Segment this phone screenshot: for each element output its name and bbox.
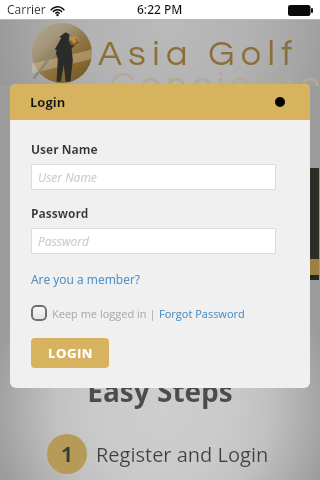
staticText: Carrier bbox=[7, 1, 46, 17]
staticText: Asia Golf bbox=[98, 35, 299, 72]
button[interactable]: Forgot Password bbox=[159, 306, 245, 321]
staticText: Register and Login bbox=[96, 441, 269, 468]
staticText: LOGIN bbox=[48, 344, 93, 362]
other: Wi-Fi bbox=[51, 5, 64, 16]
button[interactable]: Are you a member? bbox=[31, 271, 140, 287]
staticText: Easy Steps bbox=[0, 372, 320, 410]
staticText: Password bbox=[38, 233, 89, 249]
staticText: Keep me logged in | bbox=[52, 306, 159, 321]
button[interactable]: 1 bbox=[47, 434, 269, 474]
button[interactable]: Login bbox=[10, 84, 310, 120]
staticText: User Name bbox=[38, 169, 97, 185]
button[interactable]: Close bbox=[268, 90, 292, 114]
button[interactable]: User Name bbox=[31, 164, 276, 190]
staticText: User Name bbox=[31, 141, 98, 157]
staticText: Login bbox=[30, 93, 66, 111]
staticText: 6:22 PM bbox=[137, 1, 183, 17]
button[interactable]: Password bbox=[31, 228, 276, 254]
staticText: Concierge bbox=[110, 66, 320, 103]
staticText: Password bbox=[31, 205, 89, 221]
button[interactable]: Keep me logged in bbox=[31, 305, 47, 321]
staticText: 1 bbox=[61, 440, 74, 469]
button[interactable]: LOGIN bbox=[31, 338, 109, 368]
